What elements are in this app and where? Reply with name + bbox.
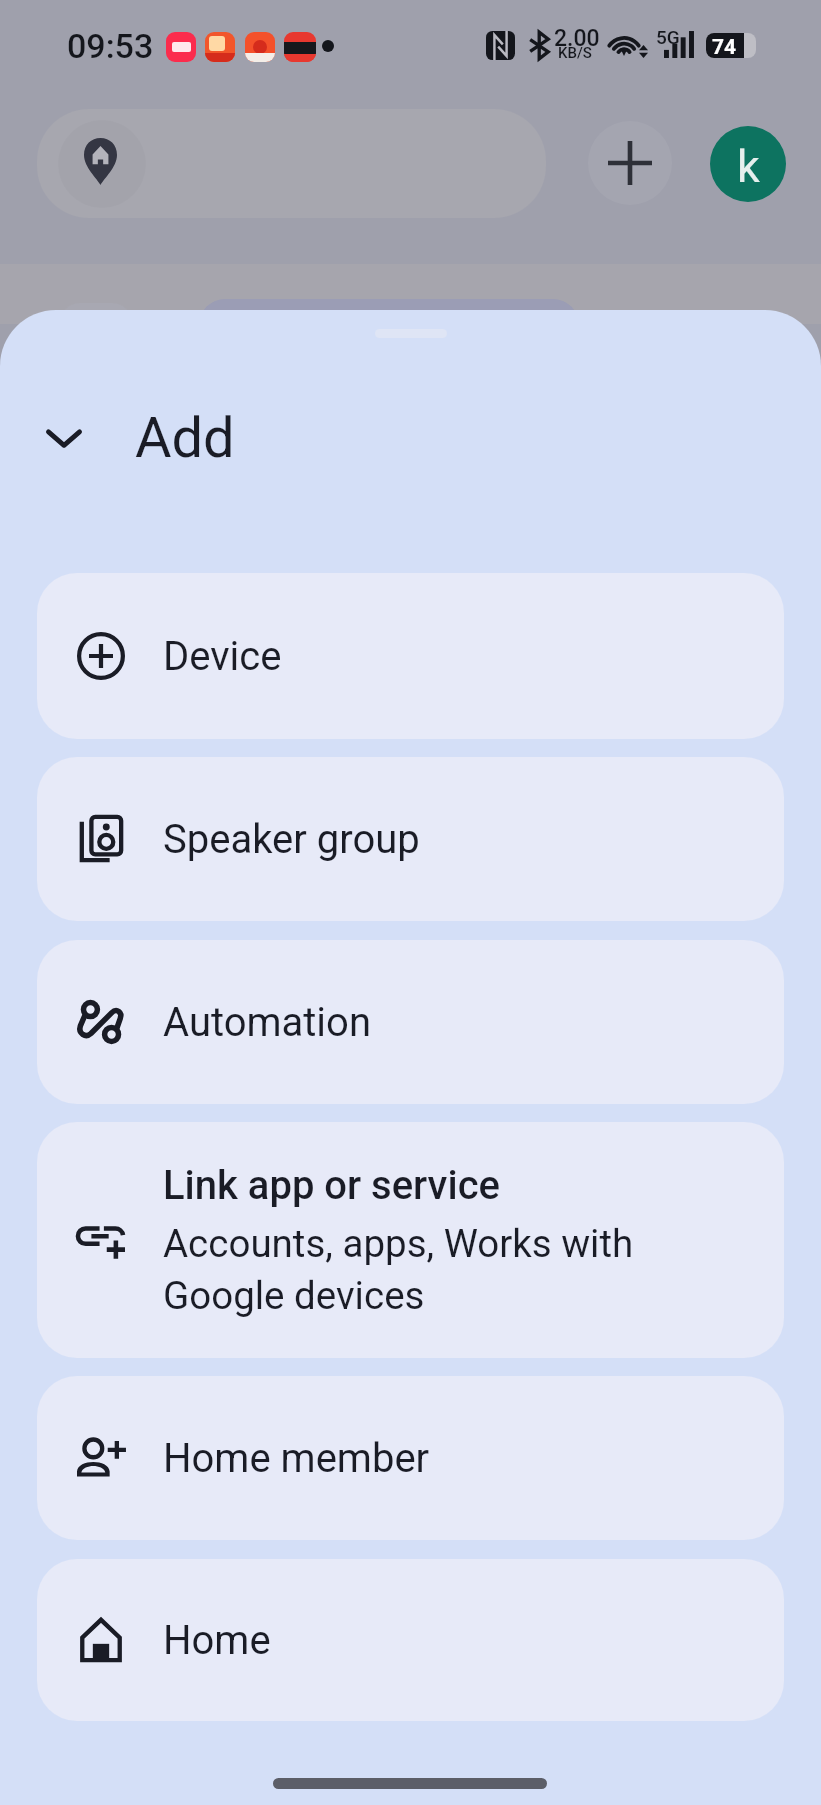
staticText: KB/S xyxy=(558,44,592,62)
button[interactable]: Collapse xyxy=(28,402,100,474)
button[interactable] xyxy=(37,109,546,218)
button[interactable]: Automation xyxy=(37,940,784,1104)
staticText: Speaker group xyxy=(163,816,420,863)
staticText: Link app or service xyxy=(163,1162,500,1209)
staticText: Home xyxy=(163,1617,271,1664)
staticText: Accounts, apps, Works with Google device… xyxy=(163,1221,663,1319)
button[interactable]: Device xyxy=(37,573,784,739)
staticText: 74 xyxy=(712,35,737,58)
button[interactable]: Home xyxy=(37,1559,784,1721)
staticText: 2.00 xyxy=(554,25,600,52)
staticText: Home member xyxy=(163,1435,430,1482)
staticText: Automation xyxy=(163,999,371,1046)
staticText: 5G xyxy=(656,26,680,48)
button[interactable]: Home member xyxy=(37,1376,784,1540)
staticText: Device xyxy=(163,633,282,680)
button[interactable]: k xyxy=(710,126,786,202)
staticText: 09:53 xyxy=(67,26,154,66)
staticText: Add xyxy=(135,405,235,471)
button[interactable]: Link app or service xyxy=(37,1122,784,1358)
staticText: k xyxy=(737,140,760,193)
button[interactable]: Speaker group xyxy=(37,757,784,921)
button[interactable]: Add xyxy=(588,121,672,205)
